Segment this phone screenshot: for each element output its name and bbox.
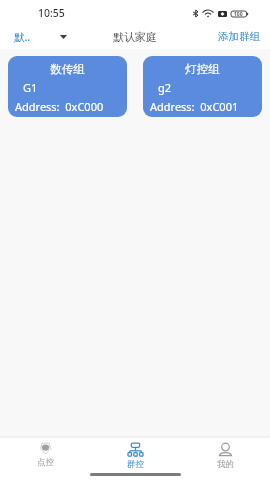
button[interactable]: 点控 — [0, 438, 90, 468]
button[interactable]: 默.. — [0, 30, 70, 44]
staticText: 100 — [234, 11, 243, 17]
staticText: Address: 0xC000 — [15, 99, 104, 114]
staticText: g2 — [158, 80, 172, 95]
staticText: 我的 — [217, 459, 234, 468]
staticText: 点控 — [37, 457, 54, 468]
button[interactable]: 我的 — [180, 438, 270, 468]
button[interactable]: 添加群组 — [218, 30, 270, 43]
staticText: 默.. — [14, 30, 31, 44]
staticText: G1 — [23, 80, 38, 95]
staticText: 10:55 — [38, 6, 65, 20]
staticText: 默认家庭 — [113, 30, 157, 44]
button[interactable]: 群控 — [90, 438, 180, 468]
button[interactable]: 数传组 — [8, 56, 127, 117]
staticText: 灯控组 — [143, 62, 262, 76]
staticText: 添加群组 — [218, 30, 260, 43]
staticText: 数传组 — [8, 62, 127, 76]
staticText: 群控 — [127, 459, 144, 468]
button[interactable]: 灯控组 — [143, 56, 262, 117]
staticText: Address: 0xC001 — [150, 99, 239, 114]
